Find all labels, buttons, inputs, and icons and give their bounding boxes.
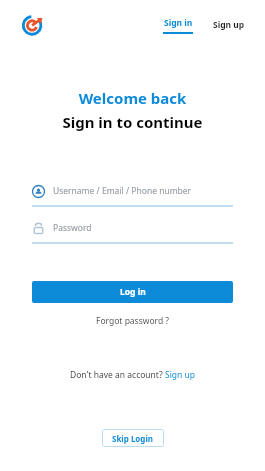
other: Username [32,185,45,198]
button[interactable]: Forgot password ? [90,313,176,329]
staticText: Sign in [164,17,193,29]
other: Password [32,222,45,235]
staticText: Don't have an account? [70,369,165,381]
button[interactable]: Username [32,180,233,207]
staticText: Log in [120,286,146,298]
button[interactable]: Password [32,217,233,244]
staticText: Sign up [165,369,196,381]
button[interactable]: Sign in [159,15,197,36]
staticText: Welcome back [0,88,265,108]
staticText: Password [53,222,92,234]
button[interactable]: App logo [22,14,44,36]
staticText: Forgot password ? [96,315,170,327]
staticText: Skip Login [112,433,154,444]
staticText: Sign in to continue [0,112,265,132]
button[interactable]: Skip Login [102,429,164,447]
button[interactable]: Log in [32,281,233,303]
button[interactable]: Sign up [165,369,196,381]
button[interactable]: Sign up [209,17,249,33]
staticText: Username / Email / Phone number [53,185,192,197]
staticText: Sign up [213,19,245,31]
